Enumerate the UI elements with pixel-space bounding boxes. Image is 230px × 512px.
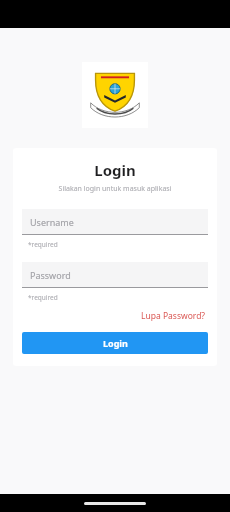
staticText: Password: [30, 269, 71, 281]
staticText: Lupa Password?: [141, 310, 206, 322]
staticText: Username: [30, 216, 74, 228]
button[interactable]: Username: [22, 209, 208, 235]
staticText: *required: [28, 293, 58, 302]
button[interactable]: Login: [22, 332, 208, 354]
staticText: Silakan login untuk masuk aplikasi: [22, 184, 208, 194]
staticText: Login: [22, 160, 208, 180]
staticText: *required: [28, 240, 58, 249]
staticText: Login: [103, 337, 128, 349]
button[interactable]: Password: [22, 262, 208, 288]
button[interactable]: Lupa Password?: [139, 309, 208, 323]
